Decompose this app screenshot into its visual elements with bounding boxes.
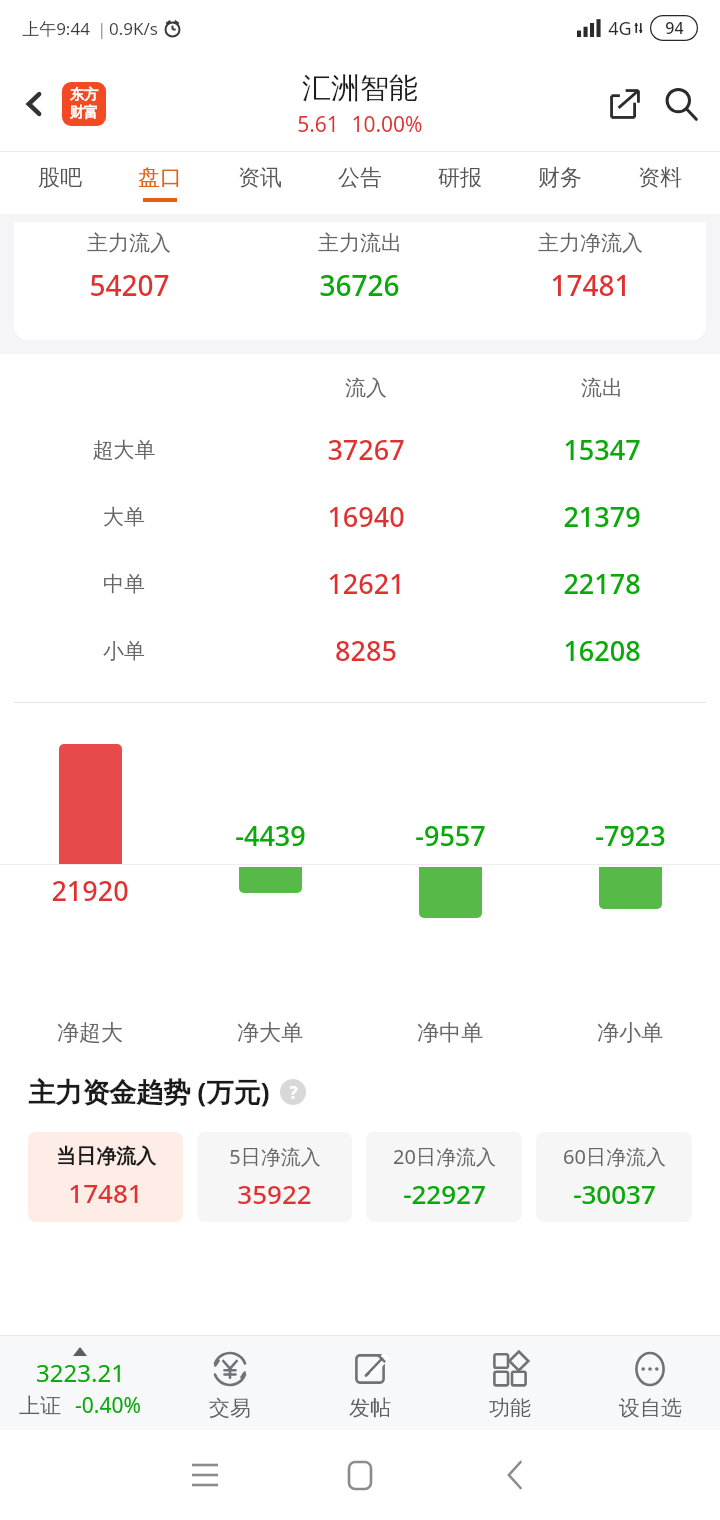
- staticText: 小单: [0, 638, 248, 664]
- staticText: 交易: [209, 1395, 251, 1421]
- staticText: -7923: [595, 817, 666, 854]
- button[interactable]: 20日净流入: [366, 1132, 522, 1222]
- staticText: 超大单: [0, 437, 248, 463]
- staticText: 净大单: [237, 1019, 303, 1047]
- button[interactable]: Post: [300, 1336, 440, 1430]
- staticText: -4439: [235, 817, 306, 854]
- button[interactable]: -7923: [540, 703, 720, 1071]
- staticText: 上午9:44: [22, 17, 90, 40]
- button[interactable]: Home: [325, 1440, 395, 1510]
- staticText: 36726: [319, 266, 400, 304]
- other: More options: [630, 1349, 670, 1389]
- button[interactable]: 中单: [0, 550, 720, 617]
- staticText: 设自选: [619, 1395, 682, 1421]
- staticText: |: [90, 17, 109, 40]
- staticText: -9557: [415, 817, 486, 854]
- button[interactable]: Share: [600, 79, 650, 129]
- staticText: 盘口: [138, 164, 182, 192]
- button[interactable]: 资讯: [210, 152, 310, 214]
- button[interactable]: Functions: [440, 1336, 580, 1430]
- staticText: 研报: [438, 164, 482, 192]
- button[interactable]: 大单: [0, 483, 720, 550]
- staticText: 东方: [70, 86, 98, 104]
- staticText: 公告: [338, 164, 382, 192]
- staticText: 流入: [248, 375, 484, 401]
- staticText: 流出: [484, 375, 720, 401]
- button[interactable]: 股吧: [10, 152, 110, 214]
- staticText: 主力流入: [87, 230, 171, 256]
- staticText: 当日净流入: [56, 1144, 156, 1169]
- button[interactable]: 财务: [510, 152, 610, 214]
- staticText: 上证: [19, 1393, 61, 1419]
- button[interactable]: 盘口: [110, 152, 210, 214]
- button[interactable]: -4439: [180, 703, 360, 1071]
- staticText: 22178: [484, 565, 720, 602]
- staticText: 主力资金趋势 (万元): [28, 1073, 270, 1110]
- staticText: 资料: [638, 164, 682, 192]
- staticText: -22927: [403, 1176, 486, 1211]
- button[interactable]: 60日净流入: [536, 1132, 692, 1222]
- staticText: 财务: [538, 164, 582, 192]
- staticText: 汇洲智能: [302, 70, 418, 107]
- staticText: 功能: [489, 1395, 531, 1421]
- button[interactable]: Back: [480, 1440, 550, 1510]
- button[interactable]: Back: [12, 81, 58, 127]
- staticText: 5.61: [297, 110, 339, 139]
- staticText: 主力净流入: [538, 230, 643, 256]
- staticText: 20日净流入: [393, 1143, 496, 1170]
- button[interactable]: 超大单: [0, 416, 720, 483]
- button[interactable]: 研报: [410, 152, 510, 214]
- staticText: 资讯: [238, 164, 282, 192]
- staticText: 17481: [68, 1175, 143, 1210]
- staticText: 大单: [0, 504, 248, 530]
- staticText: 21920: [51, 872, 129, 909]
- button[interactable]: 当日净流入: [28, 1132, 183, 1222]
- staticText: 37267: [248, 431, 484, 468]
- staticText: 股吧: [38, 164, 82, 192]
- button[interactable]: 资料: [610, 152, 710, 214]
- staticText: 净超大: [57, 1019, 123, 1047]
- button[interactable]: Recent apps: [170, 1440, 240, 1510]
- button[interactable]: 3223.21: [0, 1336, 160, 1430]
- staticText: 12621: [248, 565, 484, 602]
- staticText: -30037: [573, 1176, 656, 1211]
- button[interactable]: East Money: [62, 82, 106, 126]
- staticText: 净中单: [417, 1019, 483, 1047]
- staticText: 21379: [484, 498, 720, 535]
- staticText: 35922: [237, 1176, 312, 1211]
- button[interactable]: -9557: [360, 703, 540, 1071]
- staticText: 5日净流入: [229, 1143, 321, 1170]
- staticText: 0.9K/s: [109, 17, 158, 40]
- staticText: 60日净流入: [563, 1143, 666, 1170]
- staticText: 4G: [608, 16, 632, 41]
- staticText: 财富: [70, 104, 98, 122]
- staticText: 16940: [248, 498, 484, 535]
- staticText: 16208: [484, 632, 720, 669]
- other: Functions: [490, 1349, 530, 1389]
- staticText: -0.40%: [75, 1391, 141, 1420]
- button[interactable]: More options: [580, 1336, 720, 1430]
- staticText: 8285: [248, 632, 484, 669]
- staticText: 中单: [0, 571, 248, 597]
- button[interactable]: 小单: [0, 617, 720, 684]
- button[interactable]: Help: [280, 1079, 306, 1105]
- staticText: 净小单: [597, 1019, 663, 1047]
- staticText: 54207: [89, 266, 170, 304]
- button[interactable]: 21920: [0, 703, 180, 1071]
- staticText: 主力流出: [318, 230, 402, 256]
- button[interactable]: 公告: [310, 152, 410, 214]
- button[interactable]: Trade: [160, 1336, 300, 1430]
- other: Post: [350, 1349, 390, 1389]
- button[interactable]: 5日净流入: [197, 1132, 352, 1222]
- button[interactable]: Search: [656, 79, 706, 129]
- other: Trade: [210, 1349, 250, 1389]
- staticText: 3223.21: [36, 1356, 125, 1389]
- staticText: 发帖: [349, 1395, 391, 1421]
- staticText: 17481: [550, 266, 631, 304]
- staticText: 94: [665, 17, 684, 39]
- staticText: ?: [289, 1081, 298, 1104]
- staticText: 10.00%: [351, 110, 423, 139]
- staticText: 15347: [484, 431, 720, 468]
